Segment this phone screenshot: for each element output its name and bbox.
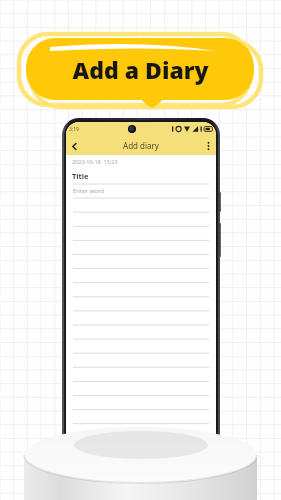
button[interactable]: More options: [200, 138, 216, 154]
button[interactable]: Back: [66, 138, 82, 154]
button[interactable]: Add a Diary: [26, 38, 254, 100]
staticText: 3:19: [69, 126, 79, 133]
staticText: Enter word: [73, 187, 105, 195]
staticText: Add diary: [123, 140, 159, 151]
staticText: Add a Diary: [72, 54, 209, 85]
staticText: Title: [72, 171, 89, 181]
staticText: 2023-10-18 15:23: [72, 158, 118, 165]
button[interactable]: Enter word: [66, 182, 216, 450]
button[interactable]: Title: [66, 169, 216, 182]
